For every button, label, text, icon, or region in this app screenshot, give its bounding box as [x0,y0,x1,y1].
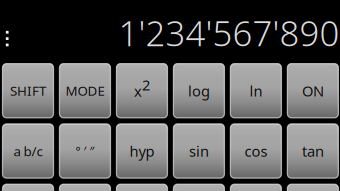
staticText: SHIFT [10,82,46,99]
button[interactable]: ° ′ ″ [59,124,110,178]
staticText: ln [249,81,262,100]
staticText: ON [302,81,324,100]
staticText: a b/c [13,142,42,160]
button[interactable] [173,184,224,191]
button[interactable]: SHIFT [2,64,53,118]
button[interactable]: hyp [116,124,167,178]
staticText: sin [189,141,209,161]
button[interactable] [59,184,110,191]
staticText: tan [302,141,324,161]
staticText: ° ′ ″ [75,143,94,159]
button[interactable] [287,184,338,191]
staticText: 2 [142,75,150,94]
button[interactable]: cos [230,124,281,178]
staticText: log [188,81,210,100]
staticText: cos [244,141,267,161]
button[interactable]: a b/c [2,124,53,178]
button[interactable]: ln [230,64,281,118]
button[interactable]: Menu [0,22,17,56]
staticText: 1'234'567'890 [118,10,339,56]
button[interactable]: ON [287,64,338,118]
staticText: hyp [129,141,154,161]
button[interactable]: MODE [59,64,110,118]
button[interactable] [116,184,167,191]
button[interactable] [2,184,53,191]
button[interactable]: log [173,64,224,118]
button[interactable]: tan [287,124,338,178]
button[interactable] [230,184,281,191]
button[interactable]: sin [173,124,224,178]
button[interactable]: x [116,64,167,118]
staticText: x [134,81,142,101]
staticText: MODE [65,82,104,99]
